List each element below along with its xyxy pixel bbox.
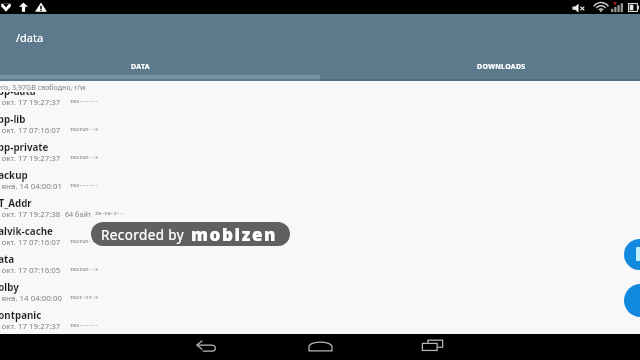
button[interactable]: Recents — [406, 332, 458, 358]
staticText: 3 окт. 17 19:27:37 — [0, 97, 61, 108]
staticText: 5 окт. 17 07:16:05 — [0, 265, 61, 276]
button[interactable]: dolby — [0, 281, 640, 309]
staticText: dolby — [0, 281, 19, 294]
staticText: rwxr-xr-x — [70, 293, 99, 300]
staticText: app-private — [0, 141, 49, 154]
button[interactable]: DOWNLOADS — [320, 14, 640, 81]
staticText: rwx------ — [70, 321, 99, 328]
staticText: 5 окт. 17 07:16:07 — [0, 125, 61, 136]
button[interactable]: app-data — [0, 85, 640, 113]
staticText: rwx------ — [70, 181, 99, 188]
staticText: rwxrwx--x — [70, 265, 99, 272]
button[interactable]: dalvik-cache — [0, 225, 640, 253]
staticText: DOWNLOADS — [477, 62, 526, 71]
staticText: backup — [0, 169, 28, 182]
button[interactable]: app-lib — [0, 113, 640, 141]
staticText: /data — [16, 30, 44, 45]
button[interactable]: data — [0, 253, 640, 281]
staticText: app-lib — [0, 113, 26, 126]
staticText: 1 янв. 14 04:00:00 — [0, 293, 62, 304]
staticText: 3 окт. 17 19:27:37 — [0, 321, 61, 332]
staticText: rw-rw-r-- — [95, 209, 124, 216]
button[interactable]: dontpanic — [0, 309, 640, 334]
staticText: mobizen — [191, 223, 277, 246]
staticText: rwxrwx--x — [70, 125, 99, 132]
button[interactable]: Home — [292, 332, 348, 358]
staticText: DATA — [131, 62, 150, 71]
button[interactable]: New folder — [624, 239, 640, 270]
staticText: 1 янв. 14 04:00:01 — [0, 181, 62, 192]
staticText: dontpanic — [0, 309, 42, 322]
staticText: app-data — [0, 85, 36, 98]
button[interactable]: DATA — [0, 14, 281, 81]
button[interactable]: backup — [0, 169, 640, 197]
staticText: rwxrwx--x — [70, 237, 99, 244]
staticText: 3 окт. 17 19:27:37 — [0, 153, 61, 164]
staticText: rwx------ — [70, 97, 99, 104]
staticText: 5 окт. 17 07:16:07 — [0, 237, 61, 248]
staticText: BT_Addr — [0, 197, 32, 210]
staticText: data — [0, 253, 15, 266]
button[interactable]: Back — [176, 332, 236, 358]
staticText: 64 байт — [65, 209, 92, 219]
staticText: dalvik-cache — [0, 225, 53, 238]
button[interactable]: app-private — [0, 141, 640, 169]
staticText: Recorded by — [101, 226, 185, 244]
button[interactable]: Add — [624, 284, 640, 317]
staticText: 3 окт. 17 19:27:38 — [0, 209, 61, 220]
staticText: rwxrwx--x — [70, 153, 99, 160]
staticText: Всего, 3,97GB свободно, r/w — [0, 82, 86, 92]
button[interactable]: BT_Addr — [0, 197, 640, 225]
